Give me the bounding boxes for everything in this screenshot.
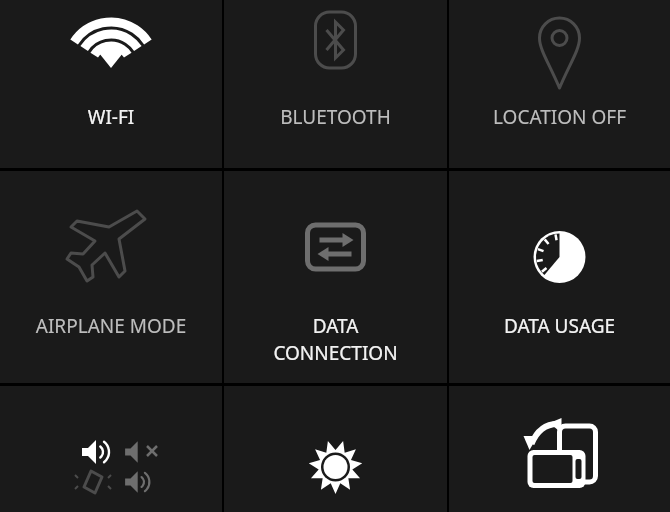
other: Data connection (224, 171, 447, 383)
other: Location off (449, 0, 670, 168)
other: Sound mode (0, 386, 222, 512)
other: Brightness (224, 386, 447, 512)
button[interactable]: Data connection (224, 171, 447, 383)
staticText: DATA USAGE (453, 313, 666, 339)
other: Data usage (449, 171, 670, 383)
staticText: WI-FI (4, 104, 218, 130)
other: Auto rotate (449, 386, 670, 512)
staticText: LOCATION OFF (453, 104, 666, 130)
button[interactable]: Sound mode (0, 386, 222, 512)
button[interactable]: Location off (449, 0, 670, 168)
staticText: AIRPLANE MODE (4, 313, 218, 339)
staticText: DATA CONNECTION (224, 313, 447, 366)
staticText: BLUETOOTH (228, 104, 443, 130)
button[interactable]: Data usage (449, 171, 670, 383)
button[interactable]: Airplane mode (0, 171, 222, 383)
button[interactable]: Auto rotate (449, 386, 670, 512)
button[interactable]: Wi-Fi (0, 0, 222, 168)
other: Airplane mode (0, 171, 222, 383)
button[interactable]: Bluetooth (224, 0, 447, 168)
button[interactable]: Brightness (224, 386, 447, 512)
other: Bluetooth (224, 0, 447, 168)
other: Wi-Fi (0, 0, 222, 168)
